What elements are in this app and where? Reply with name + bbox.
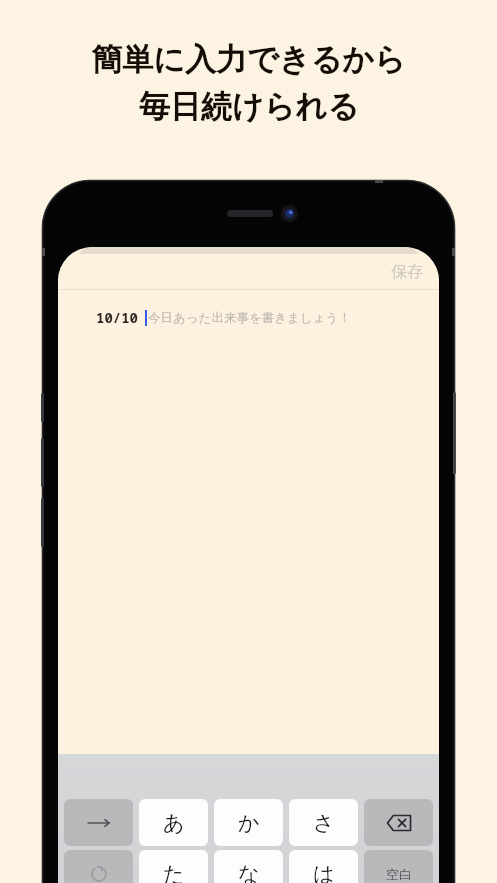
button[interactable]: 10/10 [58, 290, 439, 345]
button[interactable]: 保存 [375, 257, 439, 287]
staticText: な [238, 861, 260, 883]
staticText: か [238, 810, 260, 836]
button[interactable]: か [214, 799, 283, 846]
button[interactable]: Backspace [364, 799, 433, 846]
staticText: 10/10 [96, 308, 138, 327]
staticText: さ [313, 810, 335, 836]
button[interactable]: た [139, 850, 208, 883]
staticText: 毎日続けられる [139, 87, 359, 126]
button[interactable]: な [214, 850, 283, 883]
button[interactable]: さ [289, 799, 358, 846]
button[interactable]: あ [139, 799, 208, 846]
button[interactable]: は [289, 850, 358, 883]
button[interactable]: Undo [64, 850, 133, 883]
staticText: あ [163, 810, 185, 836]
button[interactable]: Space [364, 850, 433, 883]
staticText: 今日あった出来事を書きましょう！ [148, 310, 351, 326]
staticText: 簡単に入力できるから [91, 40, 406, 79]
staticText: 保存 [391, 262, 423, 282]
staticText: た [163, 861, 185, 883]
staticText: は [313, 861, 335, 883]
staticText: 空白 [386, 866, 412, 882]
button[interactable]: → arrow [64, 799, 133, 846]
